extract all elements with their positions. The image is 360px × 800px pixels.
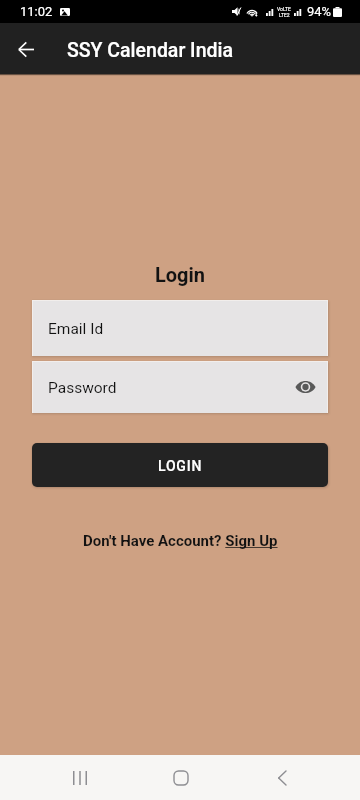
staticText: VoLTE (277, 6, 291, 12)
staticText: 11:02 (20, 4, 53, 19)
staticText: SSY Calendar India (67, 39, 233, 62)
staticText: LTE2 (279, 12, 290, 18)
staticText: Email Id (48, 320, 104, 338)
button[interactable]: Don't Have Account? Sign Up (83, 532, 278, 550)
staticText: Login (0, 263, 360, 286)
button[interactable]: Back (258, 755, 306, 800)
button[interactable]: Email Id (32, 300, 328, 356)
button[interactable]: Recent apps (54, 755, 102, 800)
button[interactable]: LOGIN (32, 443, 328, 487)
staticText: LOGIN (158, 458, 203, 474)
button[interactable]: Back (6, 29, 46, 69)
button[interactable]: Home (156, 755, 204, 800)
staticText: 94% (307, 4, 332, 19)
staticText: Password (48, 379, 117, 397)
button[interactable]: Password (32, 361, 328, 413)
button[interactable]: Show password (291, 373, 319, 401)
